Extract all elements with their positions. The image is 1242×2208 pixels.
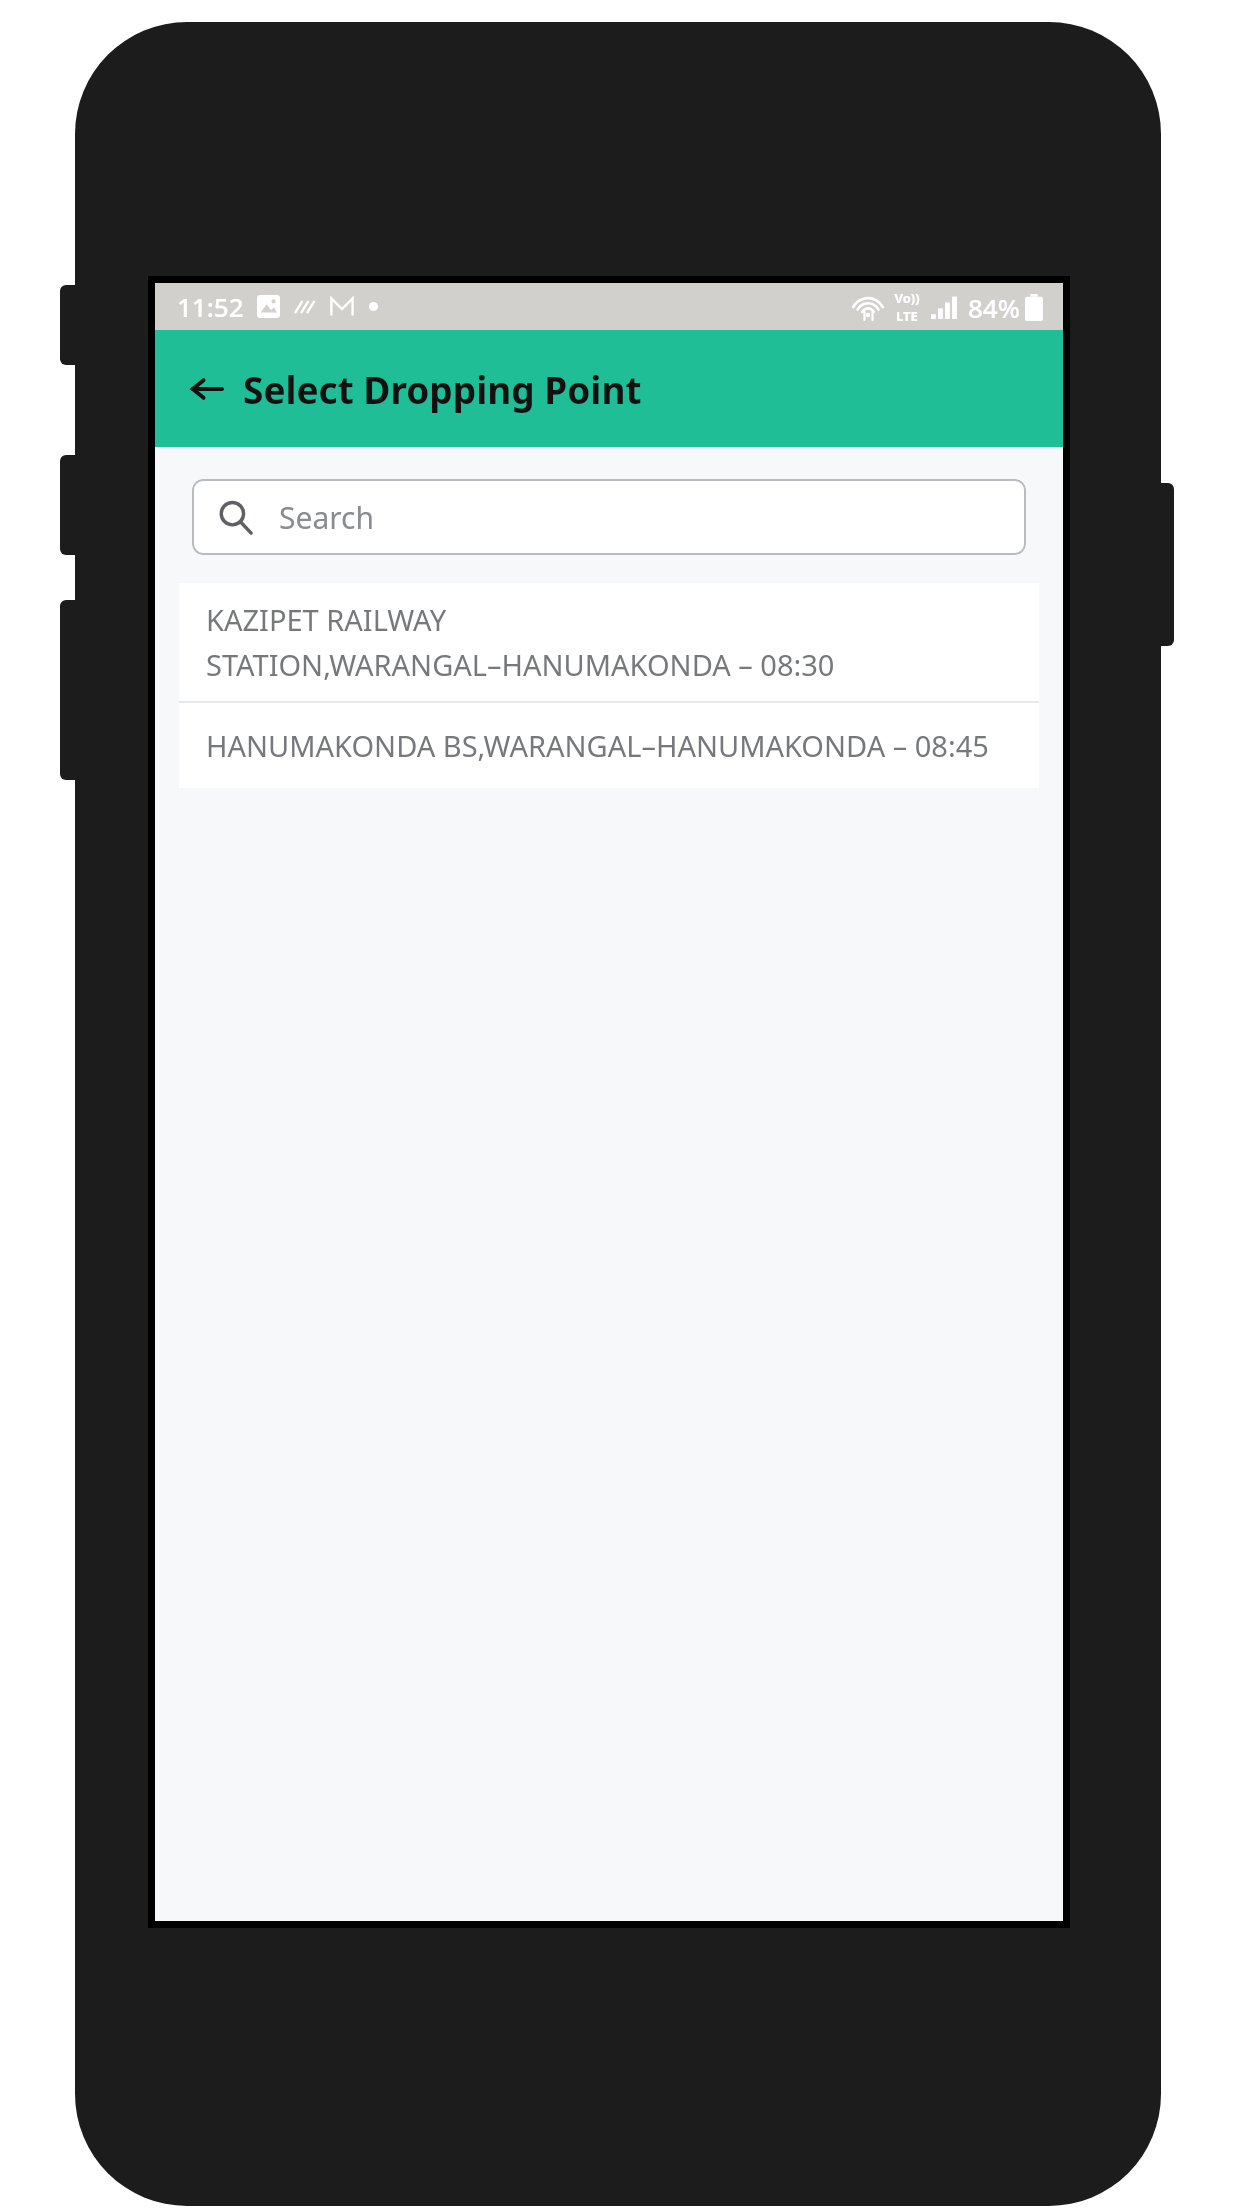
other: Back bbox=[185, 367, 229, 411]
staticText: 11:52 bbox=[177, 289, 244, 324]
button[interactable]: Search bbox=[192, 479, 1026, 555]
staticText: Vo)) bbox=[894, 289, 920, 307]
staticText: HANUMAKONDA BS,WARANGAL–HANUMAKONDA – 08… bbox=[206, 726, 989, 765]
button[interactable]: HANUMAKONDA BS,WARANGAL–HANUMAKONDA – 08… bbox=[179, 703, 1039, 788]
staticText: Search bbox=[279, 497, 374, 538]
staticText: STATION,WARANGAL–HANUMAKONDA – 08:30 bbox=[206, 645, 835, 684]
staticText: 84% bbox=[968, 290, 1020, 325]
staticText: LTE bbox=[896, 307, 918, 325]
staticText: KAZIPET RAILWAY bbox=[206, 600, 447, 639]
button[interactable]: Back bbox=[185, 364, 642, 414]
staticText: Select Dropping Point bbox=[243, 364, 642, 414]
button[interactable]: KAZIPET RAILWAY bbox=[179, 583, 1039, 701]
